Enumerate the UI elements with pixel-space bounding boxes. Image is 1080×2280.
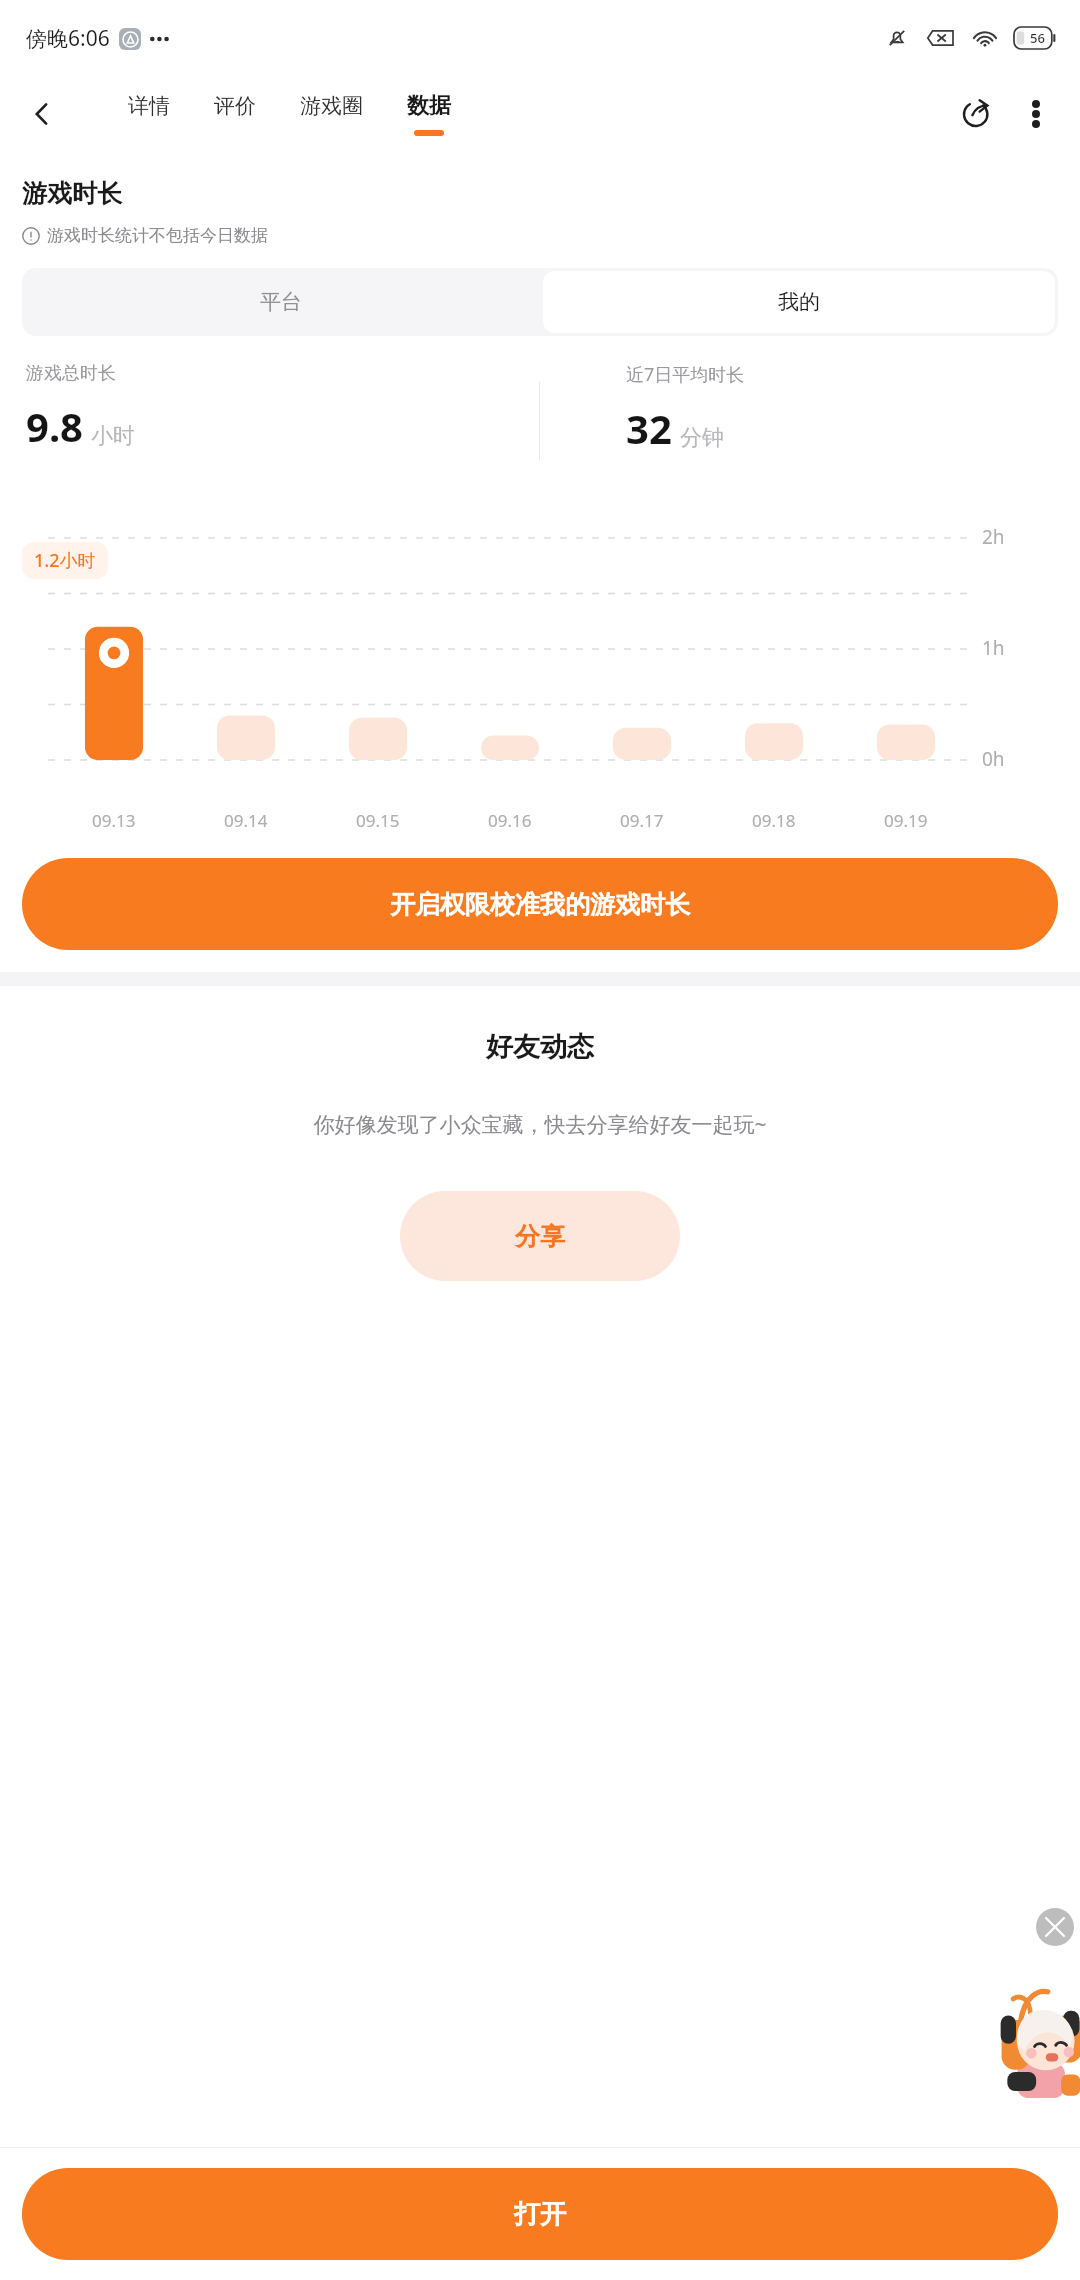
staticText: 你好像发现了小众宝藏，快去分享给好友一起玩~: [313, 1110, 767, 1139]
staticText: 数据: [407, 92, 451, 120]
button[interactable]: Back: [14, 86, 70, 142]
staticText: 打开: [514, 2198, 566, 2231]
staticText: 09.17: [620, 809, 664, 832]
staticText: 评价: [214, 93, 256, 119]
button[interactable]: 游戏圈: [298, 89, 365, 139]
staticText: 09.13: [92, 809, 136, 832]
staticText: 1.2小时: [34, 548, 96, 573]
button[interactable]: 详情: [126, 89, 172, 139]
button[interactable]: 数据: [405, 88, 453, 140]
staticText: 1h: [982, 635, 1005, 661]
button[interactable]: 分享: [400, 1191, 680, 1281]
button[interactable]: 评价: [212, 89, 258, 139]
button[interactable]: Mascot: [992, 1980, 1080, 2098]
staticText: 开启权限校准我的游戏时长: [390, 889, 690, 920]
staticText: 游戏时长统计不包括今日数据: [47, 225, 268, 246]
staticText: 小时: [91, 422, 135, 450]
staticText: 近7日平均时长: [626, 362, 745, 387]
staticText: 平台: [260, 289, 302, 315]
staticText: 游戏圈: [300, 93, 363, 119]
staticText: 2h: [982, 524, 1005, 550]
staticText: 09.14: [224, 809, 268, 832]
staticText: 好友动态: [486, 1030, 594, 1064]
staticText: 游戏时长: [22, 178, 122, 209]
button[interactable]: Close: [1036, 1908, 1074, 1946]
staticText: 分享: [515, 1221, 565, 1252]
staticText: 09.16: [488, 809, 532, 832]
staticText: 详情: [128, 93, 170, 119]
button[interactable]: Share: [948, 86, 1004, 142]
button[interactable]: 我的: [543, 271, 1055, 333]
staticText: 傍晚6:06: [26, 24, 110, 53]
button[interactable]: More options: [1010, 88, 1062, 140]
staticText: 56: [1030, 29, 1045, 47]
staticText: 09.18: [752, 809, 796, 832]
button[interactable]: 打开: [22, 2168, 1058, 2260]
button[interactable]: 平台: [22, 268, 540, 336]
staticText: 32: [626, 401, 672, 455]
staticText: 游戏总时长: [26, 362, 116, 385]
staticText: 9.8: [26, 399, 83, 453]
button[interactable]: 开启权限校准我的游戏时长: [22, 858, 1058, 950]
staticText: 分钟: [680, 424, 724, 452]
staticText: 我的: [778, 289, 820, 315]
staticText: 09.19: [884, 809, 928, 832]
staticText: 0h: [982, 746, 1005, 772]
staticText: 09.15: [356, 809, 400, 832]
